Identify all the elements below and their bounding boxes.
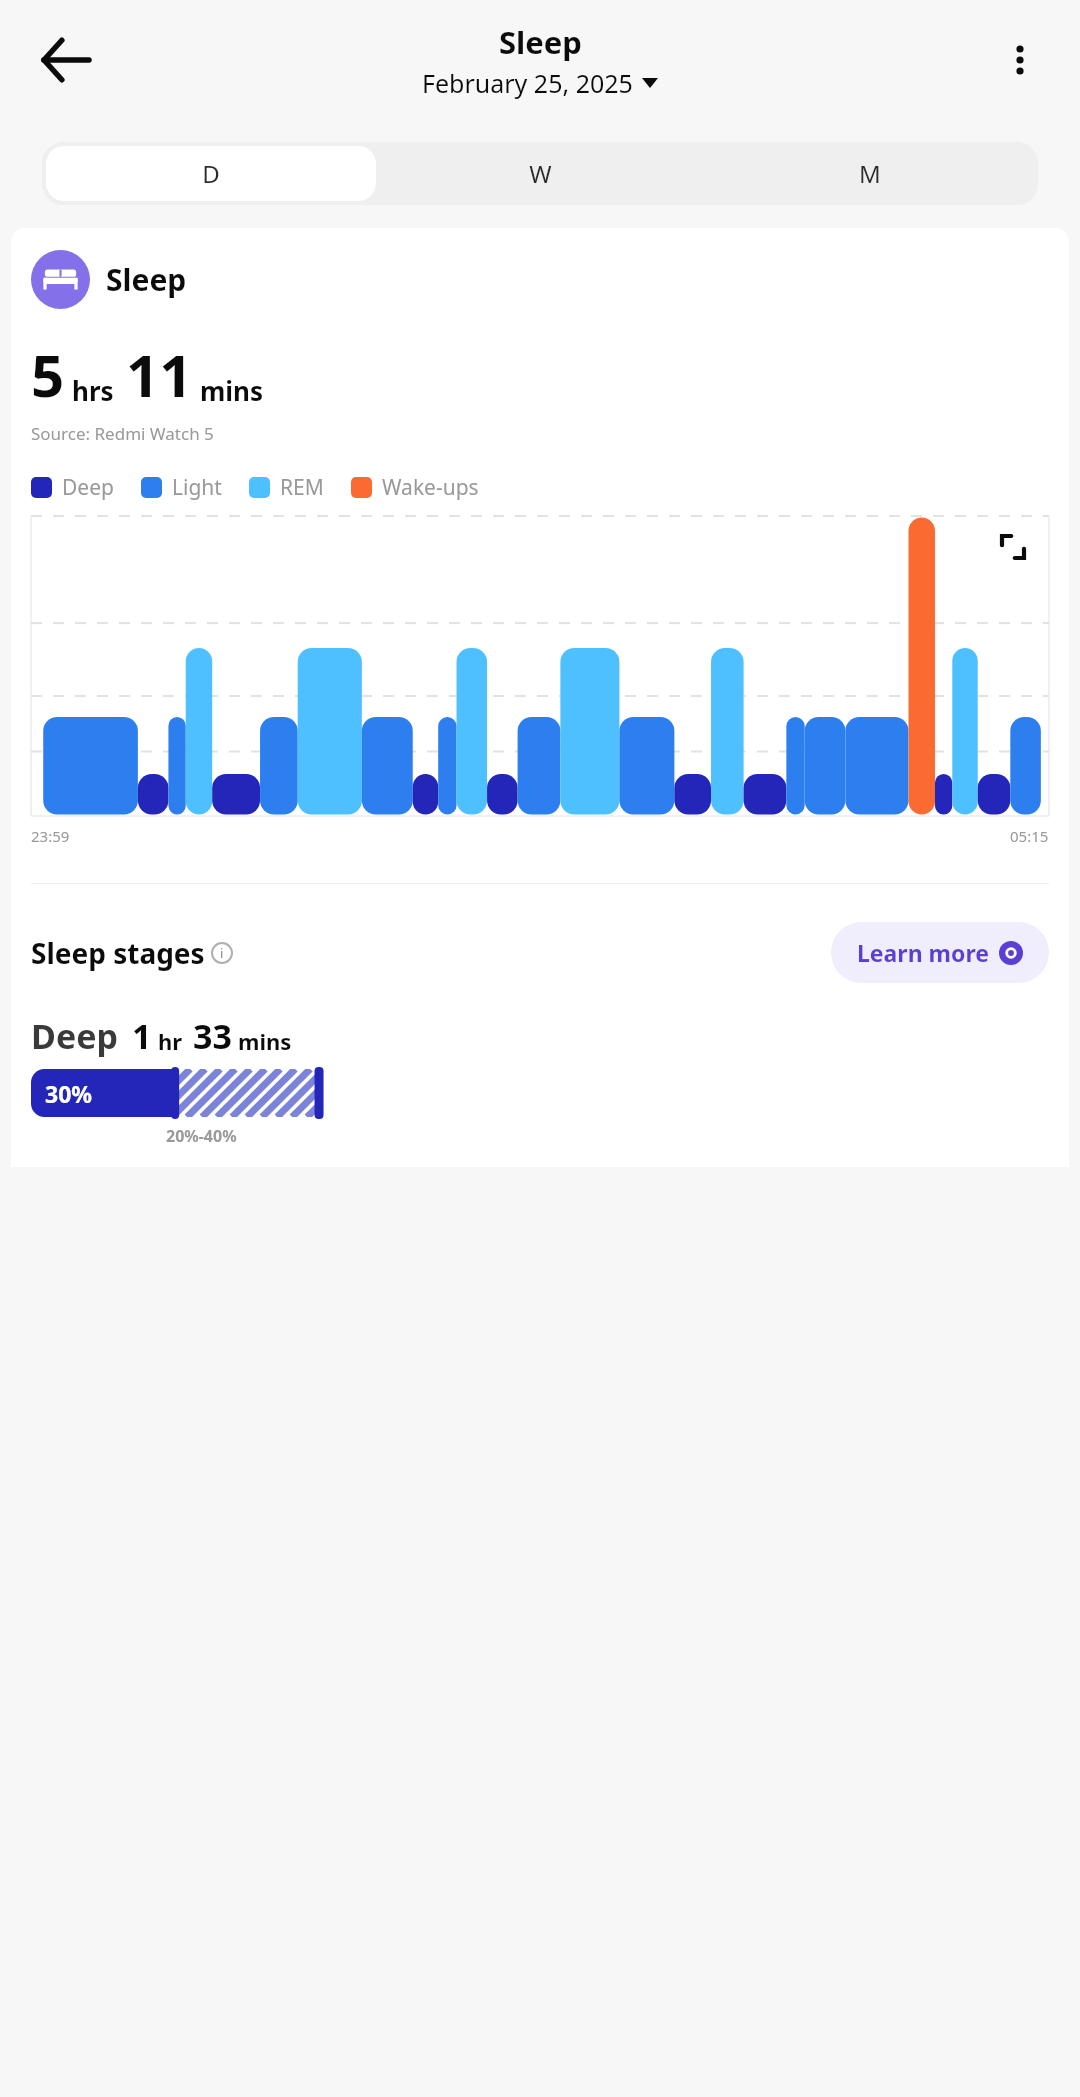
button[interactable]: Light: [141, 473, 222, 502]
staticText: Sleep: [106, 259, 187, 300]
staticText: mins: [200, 373, 264, 408]
staticText: 30%: [45, 1078, 93, 1109]
staticText: 20%-40%: [166, 1125, 237, 1147]
staticText: 05:15: [1010, 826, 1049, 846]
button[interactable]: Back: [40, 34, 92, 86]
button[interactable]: Learn more: [831, 922, 1049, 983]
staticText: Light: [172, 473, 222, 502]
staticText: W: [529, 157, 552, 190]
staticText: hrs: [72, 373, 114, 408]
staticText: 33: [193, 1013, 232, 1059]
button[interactable]: More options: [996, 36, 1044, 84]
staticText: Deep: [62, 473, 114, 502]
staticText: 23:59: [31, 826, 70, 846]
staticText: Sleep: [499, 21, 582, 63]
staticText: Learn more: [857, 937, 989, 968]
button[interactable]: D: [46, 146, 376, 201]
staticText: mins: [238, 1026, 292, 1056]
button[interactable]: M: [705, 146, 1034, 201]
staticText: Source: Redmi Watch 5: [31, 422, 214, 445]
button[interactable]: W: [376, 146, 705, 201]
button[interactable]: REM: [249, 473, 324, 502]
staticText: i: [220, 944, 224, 962]
staticText: 5: [31, 335, 65, 414]
staticText: 1: [132, 1013, 152, 1059]
staticText: D: [202, 157, 220, 190]
staticText: M: [859, 157, 881, 190]
button[interactable]: Wake-ups: [351, 473, 479, 502]
button[interactable]: Sleep stages: [31, 934, 233, 972]
button[interactable]: Expand chart: [990, 524, 1036, 570]
staticText: February 25, 2025: [422, 66, 633, 100]
staticText: Sleep stages: [31, 934, 205, 972]
staticText: Wake-ups: [382, 473, 479, 502]
staticText: 11: [126, 335, 193, 414]
staticText: Deep: [31, 1013, 118, 1059]
button[interactable]: February 25, 2025: [422, 66, 658, 100]
staticText: hr: [158, 1026, 183, 1056]
staticText: REM: [280, 473, 324, 502]
button[interactable]: Deep: [31, 473, 114, 502]
button[interactable]: Sleep: [31, 250, 187, 309]
